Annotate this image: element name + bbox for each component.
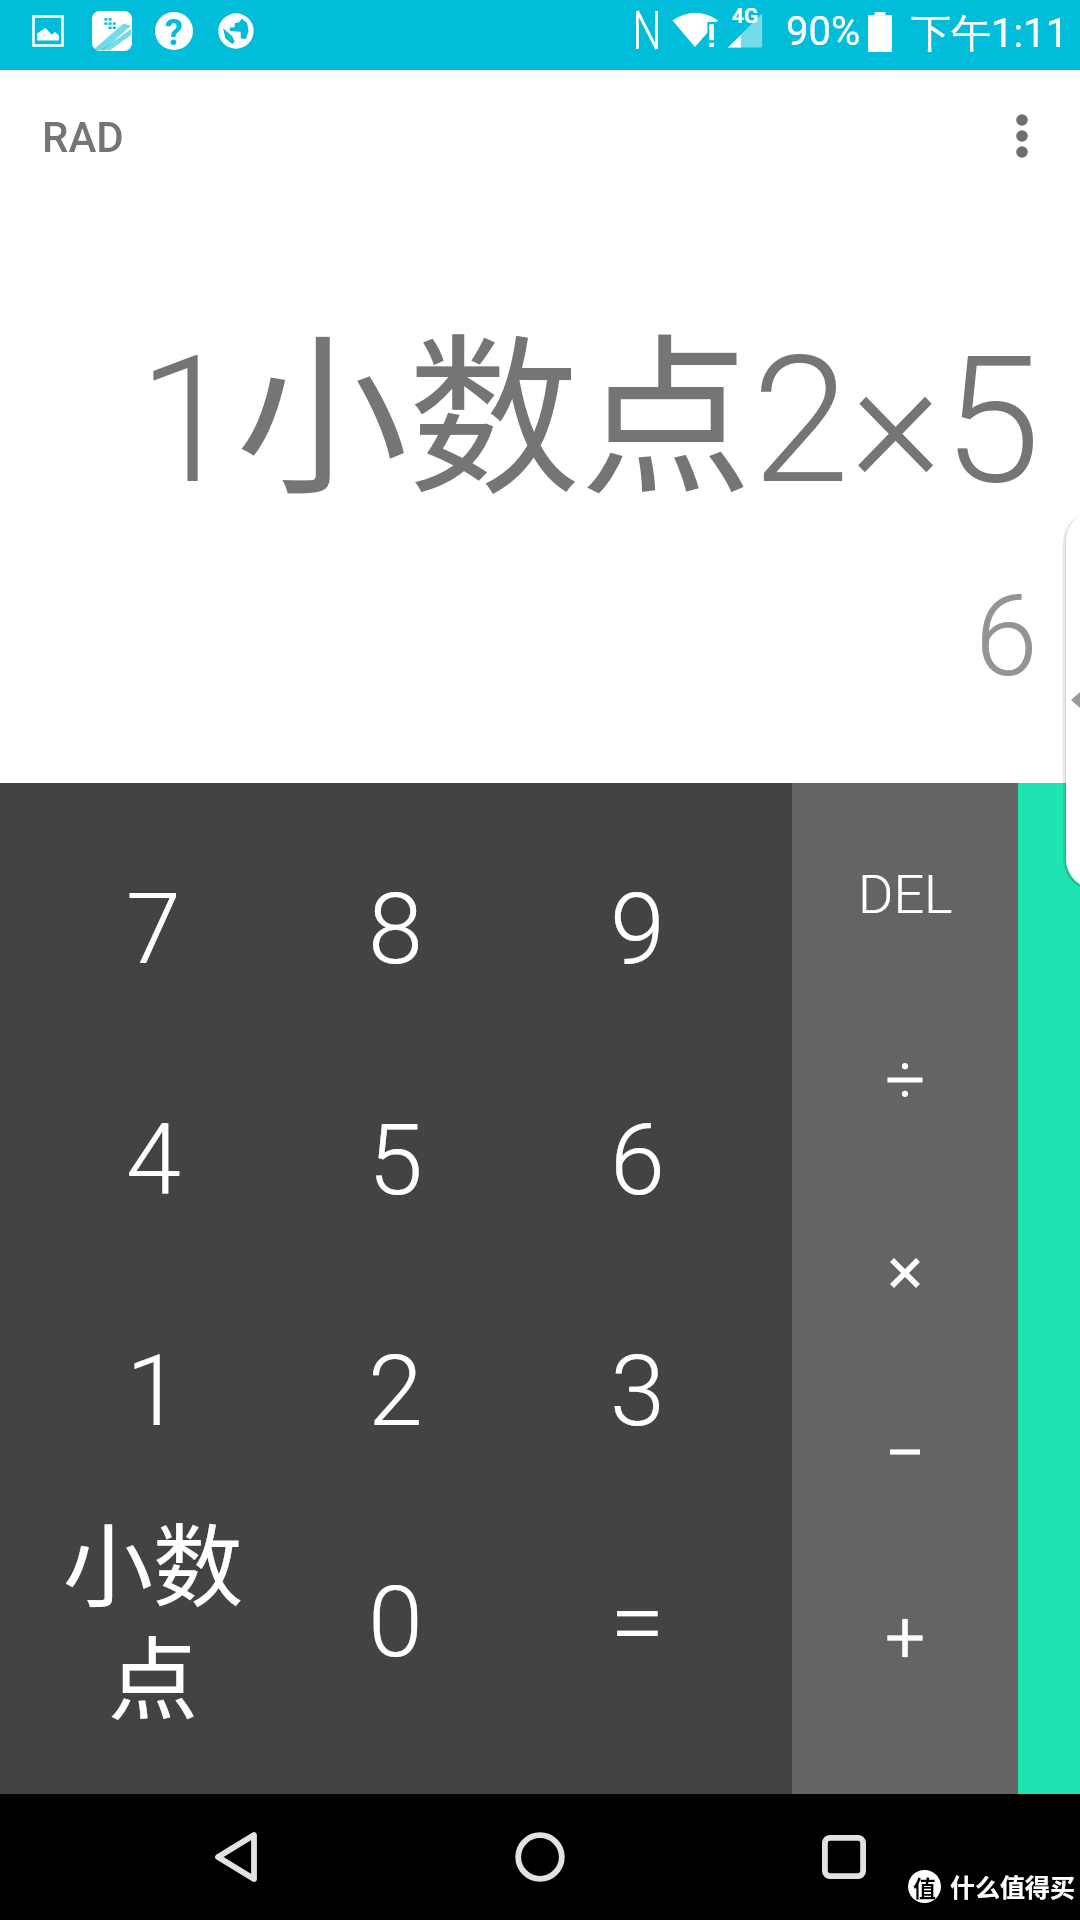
staticText: 小数点 [57,1495,249,1726]
button[interactable]: Multiply [792,1173,1018,1359]
button[interactable]: 3 [516,1275,758,1506]
staticText: 值 [913,1870,936,1903]
button[interactable]: Home [485,1802,595,1912]
button[interactable]: DEL [792,801,1018,987]
button[interactable]: 9 [516,814,758,1044]
button[interactable]: RAD [27,101,139,174]
button[interactable]: Recents [789,1802,899,1912]
staticText: 2 [752,318,850,524]
staticText: RAD [42,113,124,162]
staticText: 2 [368,1333,423,1449]
staticText: 9 [610,871,665,987]
staticText: 5 [368,1102,423,1218]
staticText: 什么值得买 [950,1868,1076,1904]
button[interactable]: = [516,1506,758,1737]
staticText: 90% [786,8,861,55]
staticText: 6 [610,1102,665,1218]
staticText: = [610,1564,665,1680]
staticText: 3 [610,1333,665,1449]
staticText: 0 [368,1564,423,1680]
button[interactable]: 7 [32,814,274,1044]
button[interactable]: Back [181,1802,291,1912]
button[interactable]: More options [967,81,1077,191]
staticText: DEL [858,863,953,926]
button[interactable]: 5 [274,1044,516,1275]
button[interactable]: Divide [792,987,1018,1173]
staticText: × [850,318,943,524]
staticText: 下午1:11 [911,8,1069,58]
staticText: 7 [126,871,181,987]
staticText: 4 [126,1102,181,1218]
button[interactable]: 1 [32,1275,274,1506]
button[interactable]: 0 [274,1506,516,1737]
button[interactable]: 小数点 [32,1506,274,1737]
button[interactable]: 8 [274,814,516,1044]
button[interactable]: 2 [274,1275,516,1506]
button[interactable]: History panel [1060,511,1080,889]
staticText: ? [165,12,183,50]
staticText: 6 [975,570,1038,702]
staticText: 1 [138,318,236,524]
staticText: 1 [126,1333,181,1449]
staticText: 8 [368,871,423,987]
button[interactable]: 4 [32,1044,274,1275]
button[interactable]: 6 [516,1044,758,1275]
button[interactable]: Plus [792,1545,1018,1731]
staticText: 4G [732,4,759,29]
staticText: 小数点 [236,279,752,528]
button[interactable]: Minus [792,1359,1018,1545]
button[interactable]: Advanced pad [1018,783,1080,1794]
staticText: 5 [943,318,1041,524]
